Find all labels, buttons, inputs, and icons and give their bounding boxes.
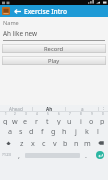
button[interactable]: b [60,137,71,149]
staticText: Ahead [9,106,23,112]
staticText: ⋮ [101,106,106,112]
staticText: Record [44,45,64,53]
staticText: r [35,116,38,125]
button[interactable]: h [59,125,70,137]
button[interactable]: 3 [20,112,31,125]
button[interactable]: v [49,137,60,149]
button[interactable]: s [15,125,26,137]
staticText: f [41,126,44,136]
staticText: Name [3,19,19,27]
staticText: 9 [91,112,93,116]
button[interactable]: Ahead [0,105,32,112]
staticText: ?123 [2,152,12,158]
staticText: c [42,138,46,148]
button[interactable]: g [48,125,59,137]
staticText: 2 [14,112,16,116]
staticText: , [18,150,20,160]
button[interactable]: Play [2,56,106,65]
staticText: o [89,116,94,125]
button[interactable]: , [14,149,24,161]
staticText: b [63,138,68,148]
staticText: 6 [58,112,60,116]
button[interactable]: Ah like new [3,29,105,41]
staticText: y [57,116,61,125]
staticText: q [3,116,8,125]
button[interactable]: z [16,137,27,149]
button[interactable]: 6 [53,112,64,125]
button[interactable]: n [71,137,82,149]
button[interactable]: j [70,125,81,137]
staticText: u [67,116,72,125]
staticText: 4 [36,112,38,116]
staticText: l [97,126,99,136]
button[interactable]: k [81,125,92,137]
staticText: 1 [5,112,7,116]
staticText: g [51,126,56,136]
staticText: Ah like new [3,29,38,38]
button[interactable]: 7 [64,112,75,125]
staticText: n [74,138,79,148]
button[interactable]: Ah [33,105,65,112]
staticText: x [31,138,35,148]
staticText: e [23,116,28,125]
staticText: j [75,126,77,136]
button[interactable]: More suggestions [99,105,108,112]
staticText: . [85,150,87,160]
button[interactable]: 8 [75,112,86,125]
button[interactable]: a [66,105,98,112]
staticText: w [12,116,18,125]
staticText: Exercise Intro [24,7,67,16]
staticText: v [53,138,57,148]
button[interactable]: . [81,149,91,161]
staticText: i [80,116,82,125]
staticText: z [20,138,24,148]
staticText: d [29,126,34,136]
button[interactable]: 1 [0,112,10,125]
button[interactable]: x [27,137,38,149]
staticText: 5 [47,112,49,116]
staticText: k [85,126,89,136]
staticText: m [84,138,91,148]
staticText: a [8,126,13,136]
staticText: 8 [80,112,82,116]
button[interactable]: Shift [0,137,16,149]
button[interactable]: c [38,137,49,149]
staticText: Play [48,57,60,65]
staticText: h [62,126,67,136]
button[interactable]: 5 [42,112,53,125]
staticText: 3 [25,112,27,116]
button[interactable]: ?123 [0,149,14,161]
staticText: t [46,116,49,125]
staticText: 0 [102,112,104,116]
button[interactable]: d [26,125,37,137]
staticText: a [81,106,84,112]
button[interactable]: a [5,125,15,137]
button[interactable]: l [92,125,103,137]
button[interactable]: Record [2,44,106,53]
button[interactable]: 0 [97,112,108,125]
button[interactable]: Delete [93,137,108,149]
staticText: s [19,126,23,136]
staticText: p [100,116,105,125]
staticText: Ah [46,106,53,112]
button[interactable]: 4 [31,112,42,125]
button[interactable]: m [82,137,93,149]
staticText: 7 [69,112,71,116]
button[interactable]: 9 [86,112,97,125]
button[interactable]: 2 [10,112,20,125]
button[interactable]: f [37,125,48,137]
button[interactable]: Enter [91,149,108,161]
button[interactable]: Navigate up [12,6,23,17]
